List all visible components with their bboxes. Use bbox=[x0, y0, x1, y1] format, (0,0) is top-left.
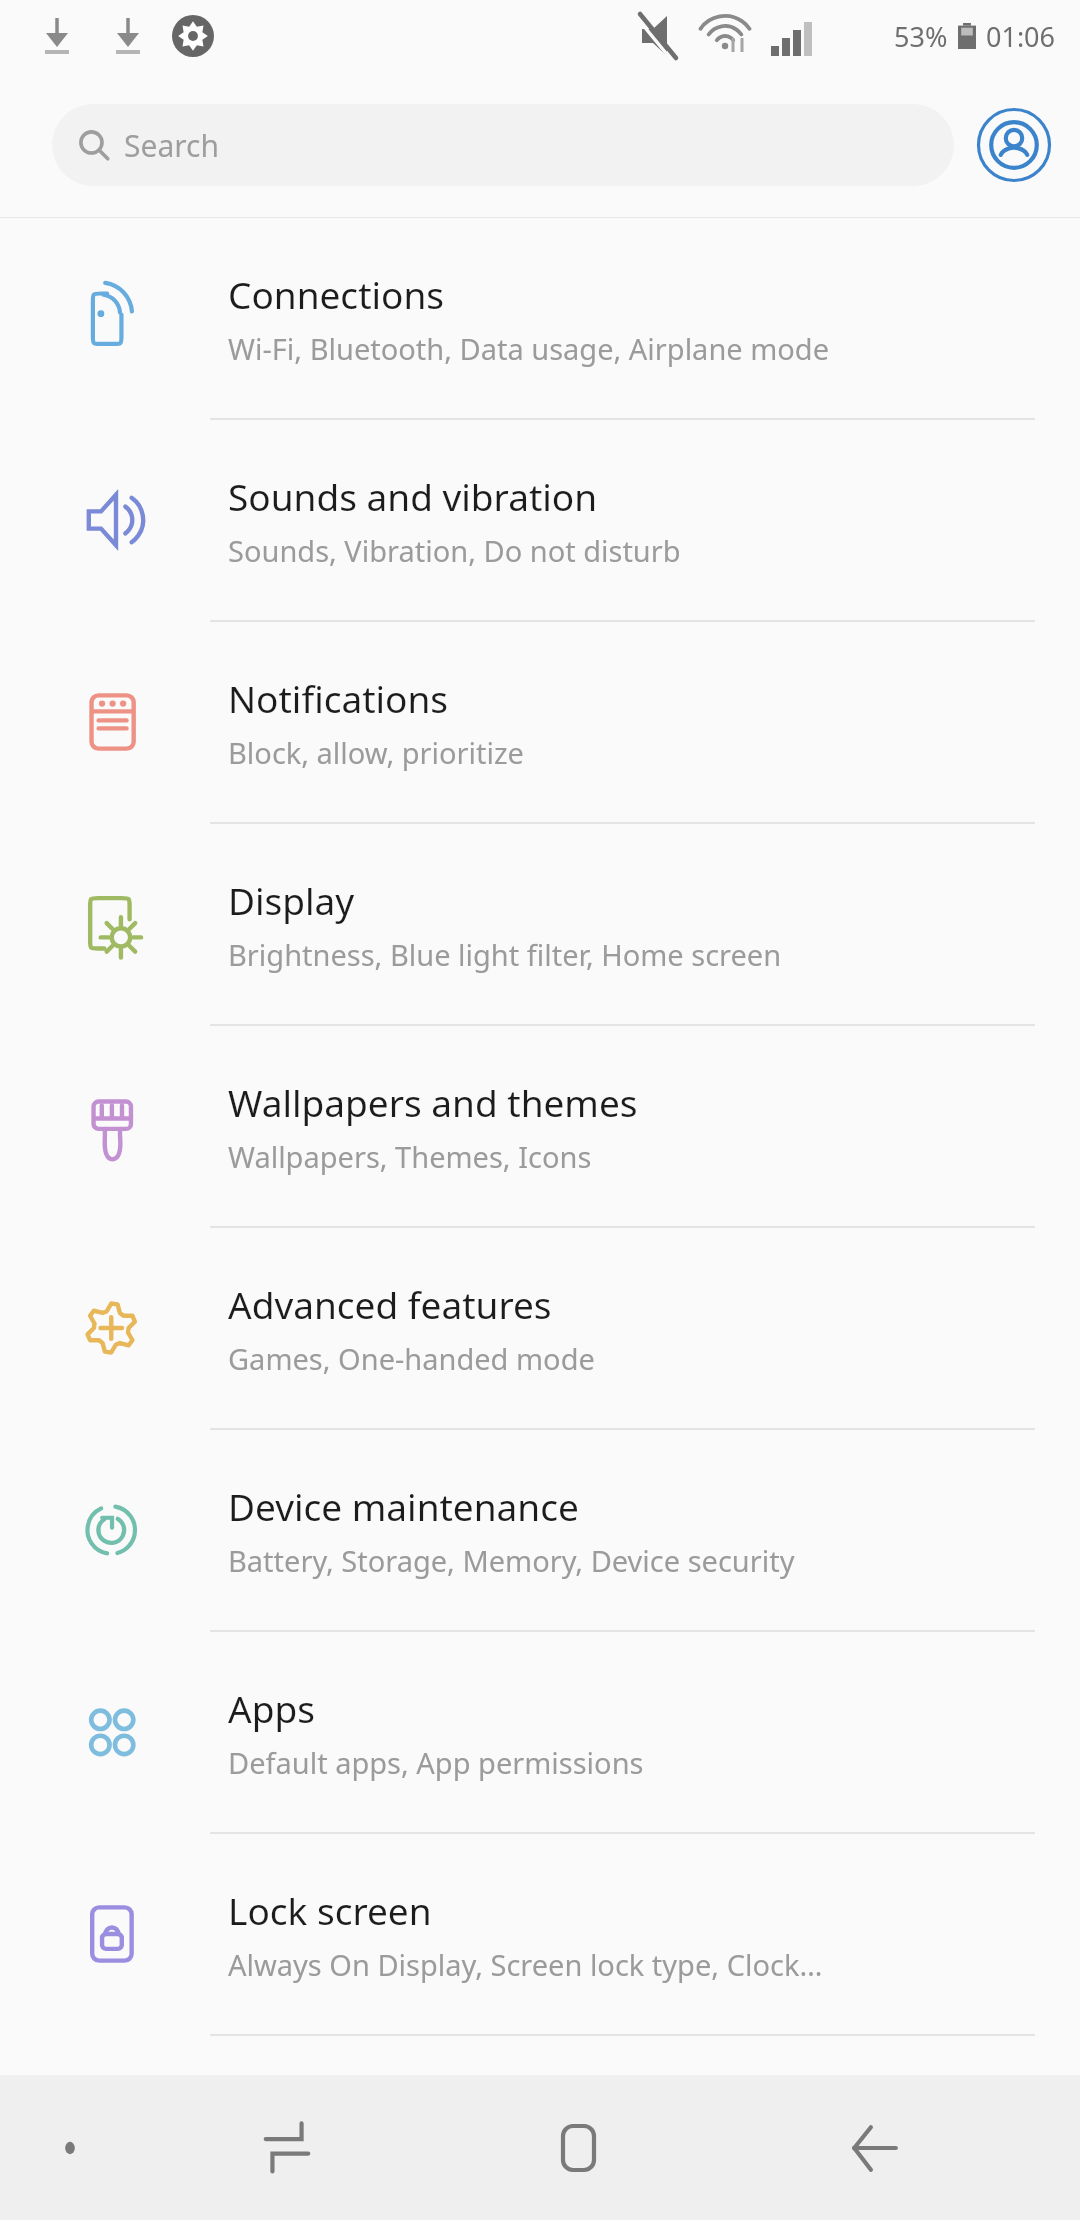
staticText: Connections bbox=[228, 269, 445, 319]
staticText: Always On Display, Screen lock type, Clo… bbox=[228, 1945, 823, 1984]
staticText: Device maintenance bbox=[228, 1481, 579, 1531]
button[interactable]: Advanced features bbox=[0, 1228, 1080, 1428]
staticText: Search bbox=[124, 125, 219, 166]
staticText: Sounds, Vibration, Do not disturb bbox=[228, 531, 681, 570]
button[interactable]: Connections bbox=[0, 218, 1080, 418]
staticText: 53% bbox=[894, 18, 948, 55]
staticText: Display bbox=[228, 875, 355, 925]
staticText: Notifications bbox=[228, 673, 449, 723]
button[interactable]: Display bbox=[0, 824, 1080, 1024]
staticText: Wallpapers and themes bbox=[228, 1077, 638, 1127]
staticText: Lock screen bbox=[228, 1885, 432, 1935]
staticText: Default apps, App permissions bbox=[228, 1743, 644, 1782]
staticText: Battery, Storage, Memory, Device securit… bbox=[228, 1541, 795, 1580]
button[interactable]: Notifications bbox=[0, 622, 1080, 822]
button[interactable]: Sounds and vibration bbox=[0, 420, 1080, 620]
staticText: Sounds and vibration bbox=[228, 471, 598, 521]
button[interactable]: Back bbox=[727, 2075, 1020, 2220]
button[interactable]: Account bbox=[976, 107, 1052, 183]
staticText: 01:06 bbox=[986, 18, 1056, 55]
staticText: Block, allow, prioritize bbox=[228, 733, 524, 772]
button[interactable]: Apps bbox=[0, 1632, 1080, 1832]
staticText: Games, One-handed mode bbox=[228, 1339, 595, 1378]
staticText: Wallpapers, Themes, Icons bbox=[228, 1137, 592, 1176]
staticText: Apps bbox=[228, 1683, 315, 1733]
button[interactable]: Recents bbox=[140, 2075, 434, 2220]
button[interactable]: Device maintenance bbox=[0, 1430, 1080, 1630]
button[interactable]: Home bbox=[434, 2075, 727, 2220]
staticText: Wi-Fi, Bluetooth, Data usage, Airplane m… bbox=[228, 329, 830, 368]
button[interactable]: Lock screen bbox=[0, 1834, 1080, 2034]
button[interactable]: Wallpapers and themes bbox=[0, 1026, 1080, 1226]
staticText: Brightness, Blue light filter, Home scre… bbox=[228, 935, 782, 974]
staticText: Advanced features bbox=[228, 1279, 552, 1329]
button[interactable]: Search bbox=[52, 104, 954, 186]
